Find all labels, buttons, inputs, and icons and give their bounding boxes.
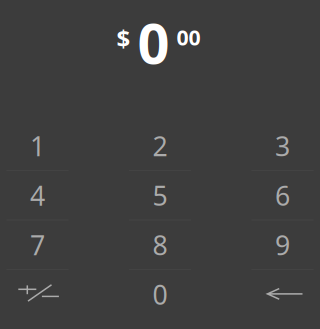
- button[interactable]: 2: [107, 121, 213, 171]
- staticText: 5: [152, 178, 167, 213]
- staticText: 4: [30, 178, 45, 213]
- staticText: 8: [152, 227, 167, 263]
- button[interactable]: 7: [0, 220, 90, 270]
- button[interactable]: Toggle sign: [0, 270, 90, 319]
- button[interactable]: 8: [107, 220, 213, 270]
- staticText: 1: [30, 128, 45, 164]
- button[interactable]: 1: [0, 121, 90, 171]
- button[interactable]: 3: [229, 121, 320, 171]
- staticText: 2: [152, 128, 167, 164]
- button[interactable]: 9: [229, 220, 320, 270]
- staticText: 9: [275, 227, 290, 263]
- staticText: $: [116, 22, 130, 54]
- button[interactable]: Delete: [229, 270, 320, 319]
- button[interactable]: 0: [107, 270, 213, 319]
- staticText: 0: [152, 277, 167, 312]
- button[interactable]: 5: [107, 171, 213, 220]
- staticText: 6: [275, 178, 290, 213]
- button[interactable]: 4: [0, 171, 90, 220]
- staticText: 00: [176, 23, 200, 51]
- staticText: 7: [30, 227, 45, 263]
- staticText: 3: [275, 128, 290, 164]
- staticText: 0: [137, 5, 169, 79]
- button[interactable]: 6: [229, 171, 320, 220]
